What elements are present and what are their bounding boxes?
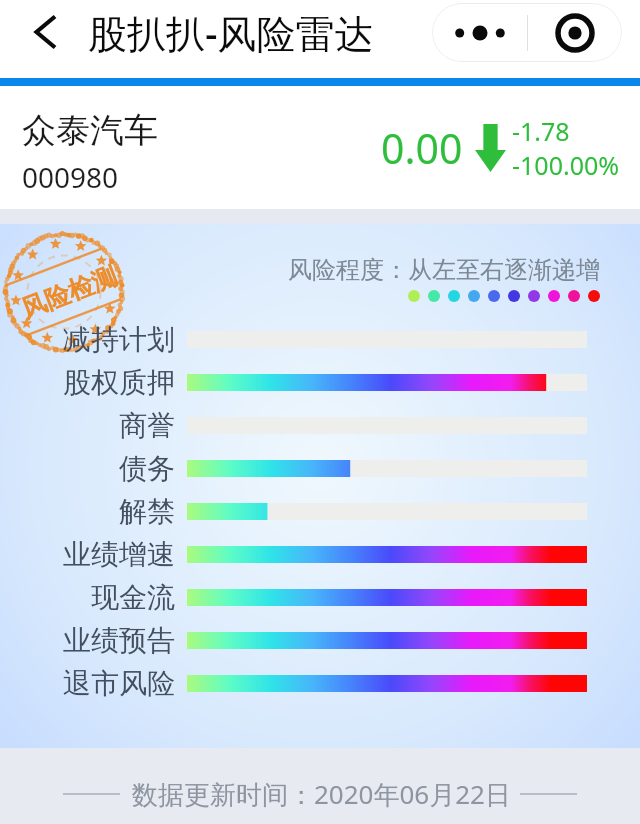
staticText: 减持计划 <box>63 322 175 357</box>
staticText: 风险检测 <box>17 260 121 325</box>
staticText: 股权质押 <box>63 365 175 400</box>
staticText: 退市风险 <box>63 666 175 701</box>
button[interactable]: 业绩预告 <box>0 619 640 662</box>
staticText: 0.00 <box>381 120 463 176</box>
button[interactable]: 减持计划 <box>0 318 640 361</box>
staticText: 业绩增速 <box>63 537 175 572</box>
button[interactable]: 业绩增速 <box>0 533 640 576</box>
button[interactable]: 股权质押 <box>0 361 640 404</box>
button[interactable]: Close mini program <box>528 3 622 62</box>
button[interactable]: 退市风险 <box>0 662 640 705</box>
staticText: 数据更新时间：2020年06月22日 <box>132 776 511 812</box>
button[interactable]: Back <box>26 13 64 51</box>
staticText: -100.00% <box>512 148 620 182</box>
staticText: 现金流 <box>91 580 175 615</box>
button[interactable]: 债务 <box>0 447 640 490</box>
button[interactable]: 解禁 <box>0 490 640 533</box>
button[interactable]: 商誉 <box>0 404 640 447</box>
button[interactable]: More options <box>432 3 527 62</box>
staticText: 风险程度：从左至右逐渐递增 <box>288 255 600 285</box>
staticText: -1.78 <box>512 114 570 148</box>
staticText: 债务 <box>119 451 175 486</box>
staticText: 业绩预告 <box>63 623 175 658</box>
staticText: 000980 <box>22 158 119 196</box>
staticText: 解禁 <box>119 494 175 529</box>
staticText: 众泰汽车 <box>22 109 158 152</box>
staticText: 商誉 <box>119 408 175 443</box>
button[interactable]: 现金流 <box>0 576 640 619</box>
staticText: 股扒扒-风险雷达 <box>88 6 374 59</box>
